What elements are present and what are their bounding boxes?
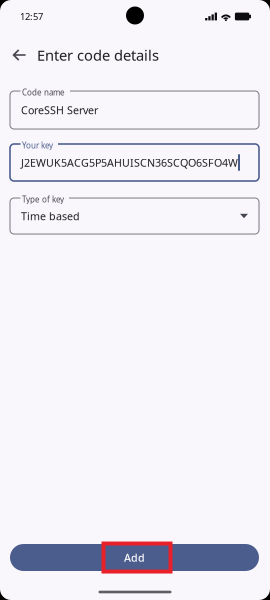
staticText: Code name (22, 87, 65, 98)
button[interactable]: Back (6, 42, 32, 68)
staticText: Time based (21, 209, 80, 223)
staticText: Enter code details (37, 45, 159, 65)
staticText: CoreSSH Server (21, 103, 98, 117)
staticText: Type of key (22, 194, 64, 205)
staticText: Add (124, 550, 145, 565)
staticText: 12:57 (20, 10, 43, 23)
staticText: Your key (22, 140, 53, 151)
staticText: J2EWUK5ACG5P5AHUISCN36SCQO6SFO4W (21, 155, 238, 170)
button[interactable]: Add (10, 542, 259, 573)
